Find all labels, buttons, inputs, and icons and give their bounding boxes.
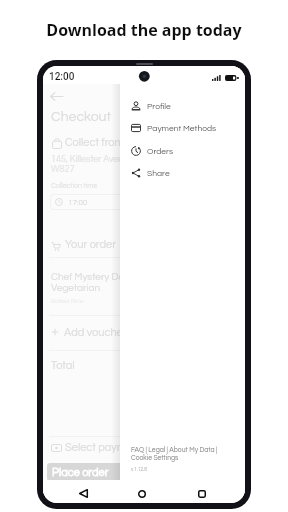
staticText: Profile [147, 102, 171, 111]
button[interactable]: Place order [47, 463, 217, 481]
button[interactable]: Share [120, 162, 245, 184]
button[interactable]: Payment Methods [120, 117, 245, 139]
staticText: Payment Methods [147, 124, 217, 133]
staticText: Select payment [65, 442, 143, 453]
staticText: Collection time [51, 182, 98, 189]
button[interactable]: Back [74, 484, 92, 502]
button[interactable]: Home [133, 485, 151, 503]
staticText: Chef Mystery Dal Vegetarian [51, 272, 127, 293]
staticText: Download the app today [0, 19, 288, 41]
staticText: Collect from [65, 137, 125, 148]
staticText: Total [51, 360, 75, 371]
staticText: 12:00 [49, 71, 75, 83]
button[interactable]: Orders [120, 140, 245, 162]
button[interactable]: Recents [193, 485, 211, 503]
staticText: Boiled Rice [51, 298, 84, 305]
staticText: 17:00 [68, 198, 88, 206]
staticText: FAQ | Legal | About My Data | Cookie Set… [131, 446, 218, 461]
staticText: v 1.12.8 [131, 467, 147, 472]
button[interactable]: Profile [120, 95, 245, 117]
staticText: Your order [65, 239, 116, 250]
staticText: Share [147, 169, 170, 178]
staticText: Orders [147, 147, 174, 156]
staticText: Checkout [51, 110, 112, 124]
staticText: Add voucher [64, 327, 127, 338]
staticText: Place order [52, 467, 109, 478]
staticText: 145, Killester Avenue W827 [51, 155, 134, 173]
